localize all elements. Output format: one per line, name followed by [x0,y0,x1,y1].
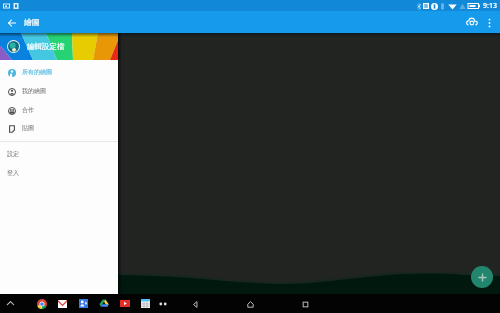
staticText: 登入 [7,169,19,177]
button[interactable]: Expand status bar [3,294,17,313]
button[interactable]: Sync [462,12,482,32]
button[interactable]: New drawing [471,266,493,288]
button[interactable]: More options [482,15,497,30]
button[interactable]: 合作 [0,100,118,120]
button[interactable]: 貼圖 [0,118,118,138]
button[interactable]: 我的繪圖 [0,81,118,101]
button[interactable]: 設定 [0,144,118,164]
staticText: 我的繪圖 [22,87,46,95]
button[interactable]: Home [242,296,258,312]
staticText: 設定 [7,150,19,158]
button[interactable]: Back [187,296,203,312]
button[interactable]: Back [2,13,21,32]
staticText: 9:13 [483,1,497,11]
staticText: 合作 [22,106,34,114]
button[interactable]: Recents [297,296,313,312]
staticText: 編輯設定檔 [27,42,65,51]
button[interactable]: 所有的繪圖 [0,62,118,82]
staticText: 貼圖 [22,124,34,132]
button[interactable]: 登入 [0,163,118,183]
staticText: 繪圖 [24,17,40,27]
staticText: 所有的繪圖 [22,68,52,76]
